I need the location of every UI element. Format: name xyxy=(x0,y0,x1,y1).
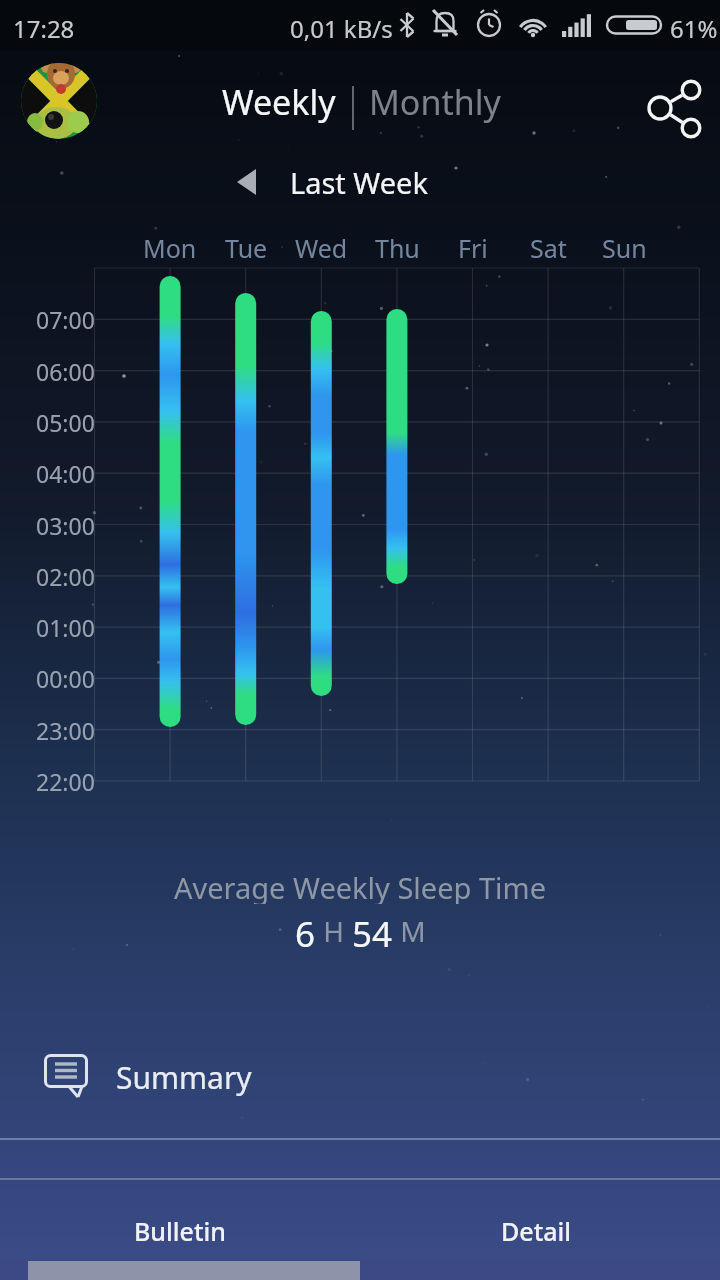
staticText: Detail xyxy=(501,1214,572,1248)
staticText: Monthly xyxy=(369,79,501,125)
staticText: 6 xyxy=(295,910,316,952)
staticText: Summary xyxy=(116,1057,252,1098)
staticText: 04:00 xyxy=(36,458,95,488)
staticText: Wed xyxy=(295,231,348,261)
staticText: 22:00 xyxy=(36,766,95,796)
staticText: Weekly xyxy=(222,79,336,125)
staticText: 05:00 xyxy=(36,407,95,437)
staticText: Mon xyxy=(143,231,197,261)
staticText: Average Weekly Sleep Time xyxy=(174,868,546,904)
staticText: Tue xyxy=(225,231,268,261)
button[interactable]: Detail xyxy=(356,1192,716,1270)
staticText: 06:00 xyxy=(36,356,95,386)
staticText: H xyxy=(316,912,352,950)
staticText: 07:00 xyxy=(36,304,95,334)
button[interactable]: Last Week xyxy=(225,158,440,206)
staticText: Last Week xyxy=(290,163,428,202)
staticText: 01:00 xyxy=(36,612,95,642)
staticText: Fri xyxy=(458,231,488,261)
staticText: M xyxy=(393,912,426,950)
staticText: Thu xyxy=(375,231,420,261)
button[interactable]: Summary xyxy=(0,1040,720,1114)
button[interactable] xyxy=(21,63,97,139)
button[interactable]: Monthly xyxy=(365,60,505,144)
staticText: 23:00 xyxy=(36,715,95,745)
staticText: 54 xyxy=(352,910,393,952)
staticText: 02:00 xyxy=(36,561,95,591)
staticText: 61% xyxy=(670,12,718,45)
staticText: Bulletin xyxy=(134,1214,226,1248)
staticText: 17:28 xyxy=(13,12,75,45)
staticText: 03:00 xyxy=(36,510,95,540)
staticText: 00:00 xyxy=(36,663,95,693)
button[interactable]: Bulletin xyxy=(0,1192,360,1270)
staticText: 0,01 kB/s xyxy=(290,12,393,45)
button[interactable] xyxy=(640,75,706,141)
button[interactable]: Weekly xyxy=(210,60,348,144)
staticText: Sun xyxy=(602,231,647,261)
staticText: Sat xyxy=(530,231,567,261)
